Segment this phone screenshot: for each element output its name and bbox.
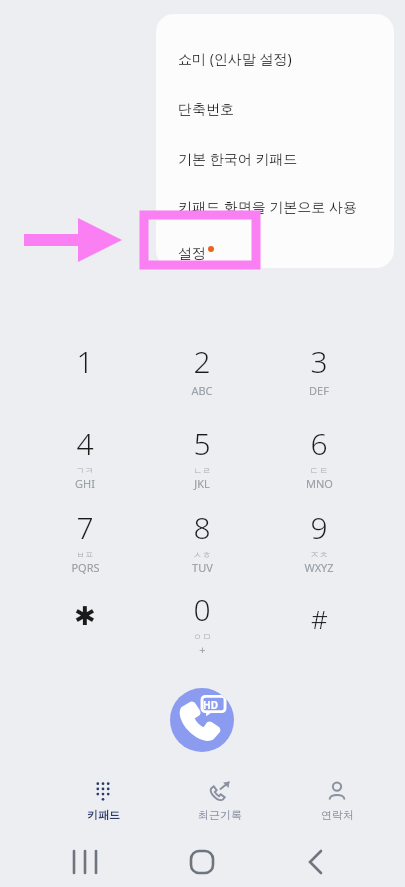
staticText: 7 <box>76 507 94 548</box>
staticText: ㄷㅌ <box>310 465 328 476</box>
staticText: GHI <box>75 476 95 491</box>
staticText: 8 <box>193 507 211 548</box>
button[interactable]: 5 <box>150 415 254 493</box>
staticText: JKL <box>194 476 210 491</box>
staticText: 2 <box>193 341 211 382</box>
button[interactable]: 최근기록 <box>185 778 255 830</box>
staticText: DEF <box>309 383 329 398</box>
staticText: 최근기록 <box>198 808 242 822</box>
staticText: TUV <box>192 560 213 575</box>
staticText: ㅈㅊ <box>310 549 328 560</box>
button[interactable]: 단축번호 <box>156 86 394 134</box>
button[interactable]: 기본 한국어 키패드 <box>156 134 394 182</box>
staticText: 6 <box>310 423 328 464</box>
button[interactable]: 키패드 화면을 기본으로 사용 <box>156 182 394 230</box>
staticText: ㅂㅍ <box>76 549 94 560</box>
staticText: # <box>311 601 328 636</box>
staticText: 1 <box>76 341 94 382</box>
button[interactable]: Call <box>170 688 234 752</box>
button[interactable]: Recents <box>55 843 115 881</box>
button[interactable]: 8 <box>150 499 254 577</box>
staticText: 단축번호 <box>178 101 234 119</box>
staticText: 키패드 <box>87 808 120 822</box>
button[interactable]: Home <box>172 843 232 881</box>
button[interactable]: 0 <box>150 581 254 659</box>
button[interactable]: # <box>267 581 371 659</box>
staticText: 3 <box>310 341 328 382</box>
staticText: ㄴㄹ <box>193 465 211 476</box>
button[interactable]: 1 <box>33 333 137 411</box>
staticText: 기본 한국어 키패드 <box>178 149 298 168</box>
button[interactable]: 3 <box>267 333 371 411</box>
button[interactable]: 6 <box>267 415 371 493</box>
staticText: 5 <box>193 423 211 464</box>
staticText: ABC <box>191 383 213 398</box>
button[interactable]: Back <box>286 843 346 881</box>
staticText: + <box>199 642 206 657</box>
staticText: HD <box>203 698 218 712</box>
staticText: ㅇㅁ <box>193 631 211 642</box>
button[interactable]: 연락처 <box>302 778 372 830</box>
button[interactable]: 쇼미 (인사말 설정) <box>156 34 394 82</box>
staticText: ㅅㅎ <box>193 549 211 560</box>
button[interactable]: 설정 <box>156 230 394 268</box>
staticText: WXYZ <box>304 560 334 575</box>
button[interactable]: 2 <box>150 333 254 411</box>
staticText: 9 <box>310 507 328 548</box>
button[interactable]: 키패드 <box>68 778 138 830</box>
staticText: 키패드 화면을 기본으로 사용 <box>178 197 357 216</box>
button[interactable]: 7 <box>33 499 137 577</box>
button[interactable]: 4 <box>33 415 137 493</box>
button[interactable]: ✱ <box>33 581 137 659</box>
staticText: ✱ <box>74 601 96 631</box>
staticText: 쇼미 (인사말 설정) <box>178 49 292 68</box>
staticText: PQRS <box>71 560 100 575</box>
staticText: ㄱㅋ <box>76 465 94 476</box>
staticText: 설정 <box>178 245 206 263</box>
staticText: 0 <box>193 589 211 630</box>
staticText: MNO <box>306 476 333 491</box>
staticText: 4 <box>76 423 94 464</box>
staticText: 연락처 <box>321 808 354 822</box>
button[interactable]: 9 <box>267 499 371 577</box>
